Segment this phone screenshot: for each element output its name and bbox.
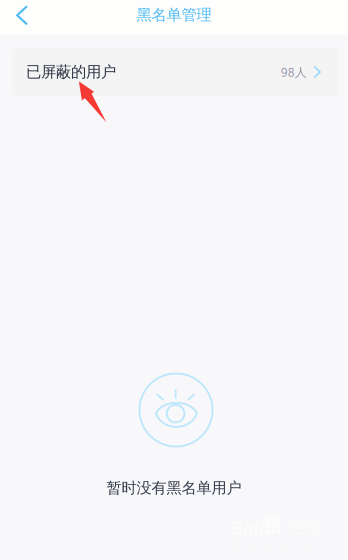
staticText: 黑名单管理	[136, 5, 211, 25]
button[interactable]: 已屏蔽的用户	[12, 48, 338, 96]
button[interactable]: 返回	[0, 0, 43, 30]
staticText: 暂时没有黑名单用户	[106, 478, 241, 498]
staticText: 98人	[281, 64, 307, 80]
staticText: 已屏蔽的用户	[26, 62, 116, 82]
